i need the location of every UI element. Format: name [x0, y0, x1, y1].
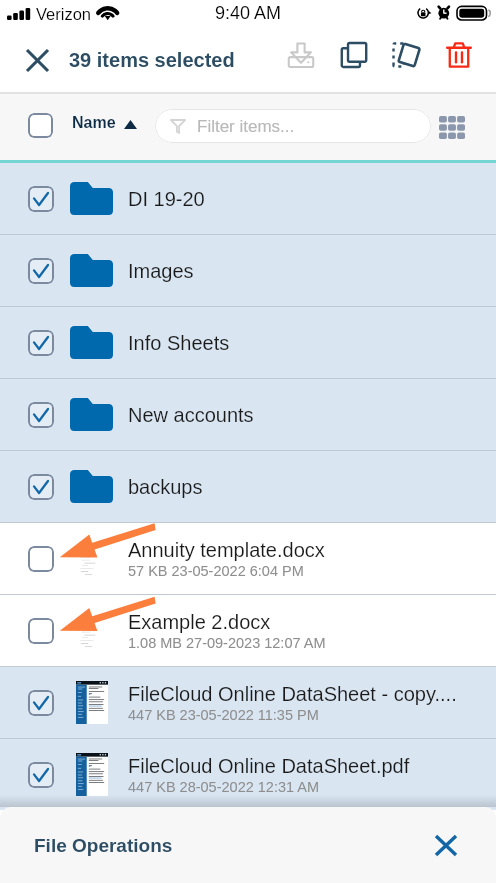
button[interactable]: Name [72, 114, 137, 132]
button[interactable]: Select item [0, 739, 496, 810]
staticText: File Operations [34, 835, 173, 856]
button[interactable]: Select item [28, 402, 54, 428]
button[interactable]: Copy [333, 34, 374, 75]
button[interactable]: Select item [28, 186, 54, 212]
button[interactable]: Select item [28, 762, 54, 788]
button[interactable]: Close selection [16, 39, 58, 81]
button[interactable]: Select item [28, 474, 54, 500]
staticText: 57 KB 23-05-2022 6:04 PM [128, 563, 304, 579]
button[interactable]: Download [280, 34, 321, 75]
staticText: 447 KB 28-05-2022 12:31 AM [128, 779, 320, 795]
staticText: Verizon [36, 5, 92, 23]
button[interactable]: Filter items... [155, 109, 431, 143]
staticText: FileCloud Online DataSheet - copy.... [128, 683, 457, 705]
button[interactable]: Select item [0, 595, 496, 666]
button[interactable]: Select item [0, 307, 496, 378]
button[interactable]: Move [385, 34, 426, 75]
staticText: 39 items selected [69, 49, 235, 71]
staticText: Images [128, 260, 194, 282]
staticText: 447 KB 23-05-2022 11:35 PM [128, 707, 319, 723]
button[interactable]: Select item [0, 379, 496, 450]
button[interactable]: Grid view [432, 107, 472, 147]
button[interactable]: Select item [28, 330, 54, 356]
staticText: 1.08 MB 27-09-2023 12:07 AM [128, 635, 326, 651]
staticText: FileCloud Online DataSheet.pdf [128, 755, 410, 777]
staticText: New accounts [128, 404, 254, 426]
button[interactable]: Select all [28, 113, 53, 138]
staticText: 9:40 AM [215, 3, 282, 23]
staticText: Info Sheets [128, 332, 230, 354]
staticText: backups [128, 476, 203, 498]
staticText: DI 19-20 [128, 188, 205, 210]
staticText: Annuity template.docx [128, 539, 325, 561]
staticText: Example 2.docx [128, 611, 271, 633]
button[interactable]: Delete [438, 34, 479, 75]
button[interactable]: Select item [0, 163, 496, 234]
button[interactable]: Select item [28, 618, 54, 644]
button[interactable]: Select item [0, 523, 496, 594]
button[interactable]: Select item [0, 667, 496, 738]
staticText: Name [72, 114, 116, 132]
button[interactable]: Select item [0, 451, 496, 522]
button[interactable]: Select item [28, 258, 54, 284]
button[interactable]: Select item [0, 235, 496, 306]
button[interactable]: Close file operations [424, 823, 468, 867]
staticText: Filter items... [197, 117, 295, 136]
button[interactable]: Select item [28, 546, 54, 572]
button[interactable]: Select item [28, 690, 54, 716]
